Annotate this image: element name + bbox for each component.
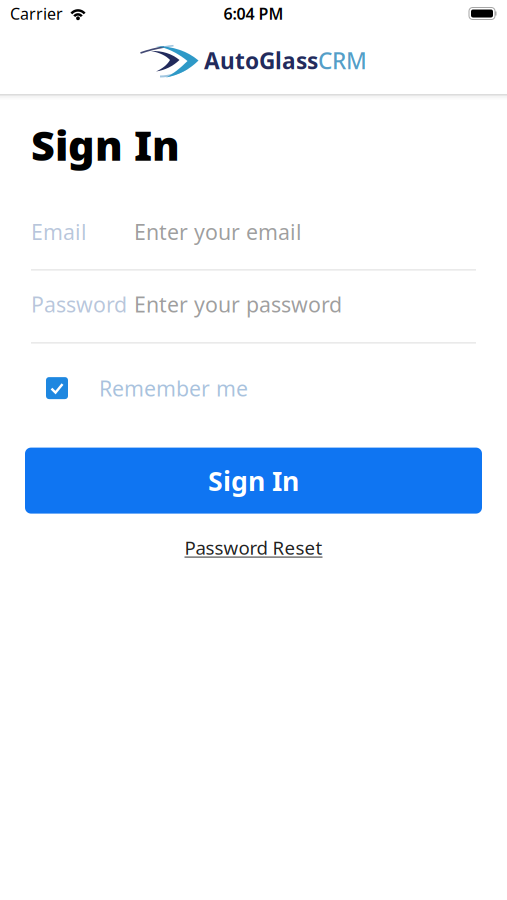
staticText: Enter your password bbox=[134, 290, 342, 318]
button[interactable]: Password Reset bbox=[184, 535, 322, 560]
staticText: Sign In bbox=[31, 117, 180, 172]
staticText: AutoGlass bbox=[204, 45, 318, 75]
staticText: Sign In bbox=[208, 463, 299, 498]
staticText: Email bbox=[31, 217, 87, 246]
staticText: Enter your email bbox=[134, 217, 302, 246]
button[interactable]: Password bbox=[0, 284, 507, 324]
staticText: 6:04 PM bbox=[223, 3, 283, 24]
staticText: Remember me bbox=[99, 374, 248, 402]
staticText: Carrier bbox=[10, 3, 63, 24]
button[interactable]: Email bbox=[0, 212, 507, 252]
staticText: CRM bbox=[318, 45, 367, 75]
staticText: Password Reset bbox=[184, 535, 322, 560]
button[interactable]: Sign In bbox=[25, 448, 482, 514]
button[interactable]: Remember me bbox=[0, 366, 507, 410]
staticText: Password bbox=[31, 290, 127, 318]
